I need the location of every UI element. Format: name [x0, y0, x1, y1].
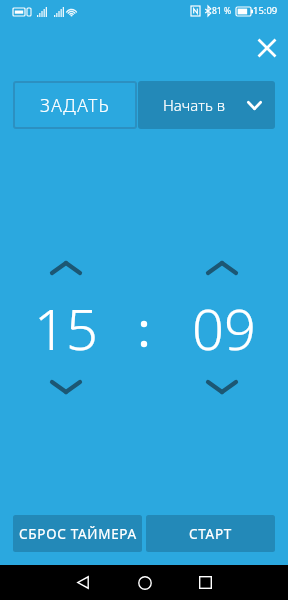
staticText: 09: [192, 290, 256, 356]
staticText: 81 %: [212, 5, 231, 17]
button[interactable]: СТАРТ: [146, 515, 275, 552]
button[interactable]: Начать в: [138, 81, 275, 129]
staticText: Начать в: [163, 95, 225, 115]
button[interactable]: Increase minutes: [194, 247, 250, 289]
button[interactable]: Decrease minutes: [194, 366, 250, 408]
staticText: СБРОС ТАЙМЕРА: [19, 525, 137, 543]
button[interactable]: Close: [247, 28, 287, 68]
button[interactable]: Increase hours: [38, 247, 94, 289]
button[interactable]: ЗАДАТЬ: [13, 81, 137, 129]
button[interactable]: Back: [62, 565, 103, 600]
button[interactable]: Recents: [185, 565, 226, 600]
button[interactable]: Decrease hours: [38, 366, 94, 408]
staticText: 15: [34, 290, 98, 356]
staticText: СТАРТ: [189, 525, 232, 543]
button[interactable]: СБРОС ТАЙМЕРА: [13, 515, 142, 552]
button[interactable]: Home: [124, 565, 165, 600]
staticText: 15:09: [253, 4, 278, 17]
staticText: ЗАДАТЬ: [40, 93, 111, 117]
